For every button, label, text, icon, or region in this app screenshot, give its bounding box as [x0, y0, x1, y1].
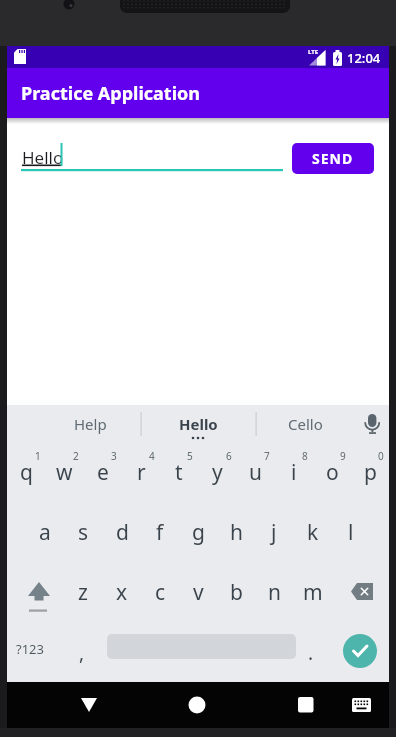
staticText: Help — [74, 414, 107, 434]
staticText: g — [192, 518, 205, 547]
button[interactable] — [65, 682, 113, 728]
button[interactable]: r — [123, 452, 159, 492]
button[interactable]: x — [104, 572, 140, 612]
button[interactable]: z — [65, 572, 101, 612]
button[interactable]: h — [218, 512, 254, 552]
staticText: v — [193, 578, 204, 607]
button[interactable]: SEND — [292, 143, 374, 174]
button[interactable] — [173, 682, 221, 728]
button[interactable]: t — [161, 452, 197, 492]
button[interactable] — [343, 634, 377, 668]
staticText: Practice Application — [21, 81, 201, 106]
button[interactable]: ?123 — [10, 637, 50, 661]
staticText: m — [303, 578, 323, 607]
button[interactable]: Help — [50, 411, 130, 437]
staticText: d — [116, 518, 129, 547]
button[interactable] — [341, 572, 383, 612]
button[interactable] — [13, 572, 55, 612]
button[interactable]: k — [295, 512, 331, 552]
staticText: 1 — [35, 449, 41, 461]
staticText: h — [230, 518, 243, 547]
button[interactable]: d — [104, 512, 140, 552]
button[interactable]: c — [142, 572, 178, 612]
button[interactable]: Practice Application — [7, 68, 389, 118]
button[interactable]: g — [180, 512, 216, 552]
staticText: 8 — [302, 449, 308, 461]
button[interactable]: p — [352, 452, 388, 492]
staticText: 5 — [187, 449, 193, 461]
staticText: x — [116, 578, 128, 607]
button[interactable]: f — [142, 512, 178, 552]
button[interactable]: u — [237, 452, 273, 492]
staticText: SEND — [312, 149, 354, 168]
staticText: 4 — [149, 449, 155, 461]
staticText: 3 — [111, 449, 117, 461]
button[interactable]: i — [276, 452, 312, 492]
staticText: i — [291, 458, 297, 487]
staticText: p — [364, 458, 377, 487]
button[interactable]: v — [180, 572, 216, 612]
staticText: Cello — [288, 414, 323, 434]
staticText: 9 — [340, 449, 346, 461]
staticText: . — [308, 640, 314, 666]
button[interactable]: s — [65, 512, 101, 552]
staticText: e — [97, 458, 109, 487]
staticText: y — [212, 458, 223, 487]
button[interactable]: a — [27, 512, 63, 552]
staticText: f — [156, 518, 164, 547]
button[interactable]: , — [70, 638, 94, 668]
button[interactable]: q — [8, 452, 44, 492]
button[interactable]: Cello — [265, 411, 345, 437]
button[interactable]: n — [256, 572, 292, 612]
staticText: o — [326, 458, 339, 487]
staticText: w — [56, 458, 73, 487]
staticText: n — [268, 578, 281, 607]
staticText: Hello — [179, 414, 218, 434]
button[interactable]: e — [85, 452, 121, 492]
staticText: , — [79, 640, 85, 666]
button[interactable]: Hello — [158, 411, 238, 437]
button[interactable]: m — [295, 572, 331, 612]
staticText: Hello — [22, 146, 64, 169]
staticText: u — [249, 458, 262, 487]
button[interactable] — [339, 682, 383, 728]
staticText: a — [39, 518, 51, 547]
staticText: 6 — [226, 449, 232, 461]
staticText: 7 — [264, 449, 270, 461]
staticText: b — [230, 578, 243, 607]
button[interactable]: l — [333, 512, 369, 552]
staticText: k — [307, 518, 319, 547]
staticText: z — [78, 578, 88, 607]
button[interactable]: . — [299, 638, 323, 668]
staticText: t — [175, 458, 183, 487]
staticText: j — [271, 518, 277, 547]
staticText: 12:04 — [347, 49, 381, 67]
staticText: 0 — [378, 449, 384, 461]
button[interactable]: b — [218, 572, 254, 612]
staticText: q — [20, 458, 33, 487]
button[interactable] — [281, 682, 329, 728]
staticText: 2 — [73, 449, 79, 461]
button[interactable]: j — [256, 512, 292, 552]
staticText: l — [348, 518, 354, 547]
button[interactable]: y — [199, 452, 235, 492]
button[interactable]: o — [314, 452, 350, 492]
button[interactable]: w — [46, 452, 82, 492]
staticText: c — [155, 578, 166, 607]
staticText: LTE — [308, 48, 319, 56]
staticText: r — [137, 458, 146, 487]
staticText: ?123 — [16, 640, 44, 658]
staticText: s — [78, 518, 89, 547]
